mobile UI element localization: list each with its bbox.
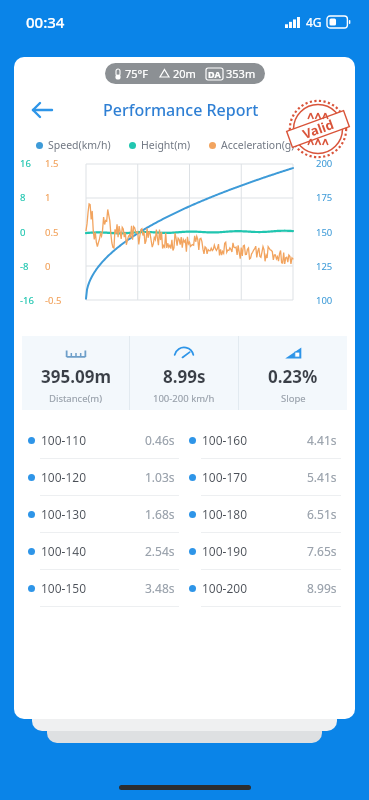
button[interactable]: 100-120 [28, 459, 341, 495]
staticText: Slope [281, 392, 306, 405]
staticText: 3.48s [145, 580, 175, 596]
staticText: 2.54s [145, 543, 175, 559]
staticText: 1.5 [45, 157, 59, 170]
staticText: 0 [45, 260, 51, 273]
staticText: 100-110 [41, 432, 87, 448]
staticText: 16 [20, 157, 31, 170]
staticText: 100-140 [41, 543, 87, 559]
staticText: 100-200 [202, 580, 248, 596]
staticText: 1.03s [145, 469, 175, 485]
staticText: 100-130 [41, 506, 87, 522]
button[interactable]: 8.99s [130, 336, 238, 410]
button[interactable]: 100-130 [28, 496, 341, 532]
staticText: 0.5 [45, 226, 59, 239]
staticText: 100-160 [202, 432, 248, 448]
button[interactable]: 100-150 [28, 570, 341, 606]
staticText: 20m [173, 66, 196, 81]
staticText: 100-120 [41, 469, 87, 485]
staticText: 175 [316, 191, 333, 204]
staticText: 100-150 [41, 580, 87, 596]
staticText: 150 [316, 226, 333, 239]
staticText: 8 [20, 191, 26, 204]
staticText: Acceleration(g) [221, 138, 295, 152]
staticText: 4.41s [307, 432, 337, 448]
button[interactable]: Back [22, 90, 62, 130]
button[interactable]: 100-110 [28, 422, 341, 458]
staticText: DA [208, 68, 221, 80]
staticText: 1.68s [145, 506, 175, 522]
staticText: 0.46s [145, 432, 175, 448]
staticText: Distance(m) [49, 392, 103, 405]
staticText: 100-180 [202, 506, 248, 522]
staticText: 75°F [125, 66, 149, 81]
staticText: 8.99s [307, 580, 337, 596]
staticText: 100-190 [202, 543, 248, 559]
other: Valid stamp [286, 97, 350, 161]
staticText: 353m [226, 66, 256, 81]
staticText: Valid [300, 115, 336, 143]
staticText: -16 [20, 294, 34, 307]
staticText: 8.99s [163, 365, 206, 388]
staticText: 100-200 km/h [153, 392, 215, 405]
staticText: 0 [20, 226, 26, 239]
staticText: 1 [45, 191, 51, 204]
staticText: Performance Report [103, 99, 259, 121]
staticText: Height(m) [141, 138, 191, 152]
staticText: 395.09m [41, 365, 111, 388]
button[interactable]: 100-140 [28, 533, 341, 569]
staticText: 0.23% [268, 365, 318, 388]
staticText: -0.5 [45, 294, 62, 307]
staticText: 100 [316, 294, 333, 307]
staticText: 100-170 [202, 469, 248, 485]
staticText: 5.41s [307, 469, 337, 485]
staticText: 125 [316, 260, 333, 273]
staticText: 00:34 [26, 12, 65, 32]
staticText: 200 [316, 157, 333, 170]
staticText: 4G [306, 14, 322, 30]
staticText: -8 [20, 260, 29, 273]
button[interactable]: 0.23% [239, 336, 347, 410]
staticText: 6.51s [307, 506, 337, 522]
staticText: Speed(km/h) [48, 138, 111, 152]
staticText: 7.65s [307, 543, 337, 559]
button[interactable]: 395.09m [22, 336, 129, 410]
button[interactable]: 75°F [105, 63, 265, 84]
